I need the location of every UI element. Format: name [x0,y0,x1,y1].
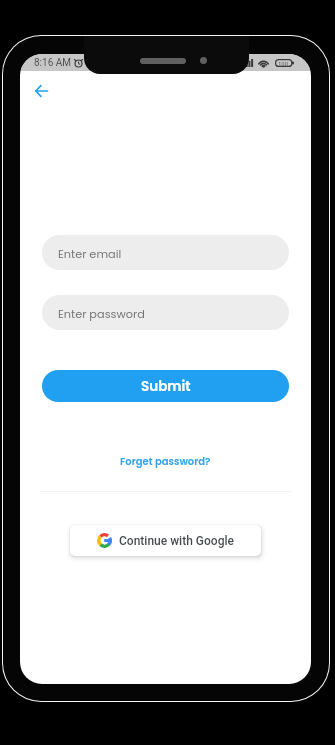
button[interactable]: Enter password [42,295,289,330]
button[interactable]: Forget password? [115,451,216,471]
button[interactable]: Submit [42,370,289,402]
staticText: Enter email [58,246,122,262]
staticText: Enter password [58,306,145,322]
button[interactable]: Enter email [42,235,289,270]
staticText: 100 [278,60,289,67]
staticText: Submit [141,377,191,396]
staticText: Continue with Google [119,534,234,548]
button[interactable]: Back [27,77,55,105]
button[interactable]: Continue with Google [70,525,261,556]
staticText: Forget password? [120,454,211,468]
staticText: 8:16 AM [34,57,72,69]
